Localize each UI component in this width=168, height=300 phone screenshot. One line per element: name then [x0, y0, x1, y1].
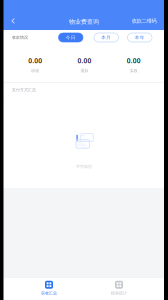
staticText: 空空如也 [76, 164, 92, 169]
button[interactable]: 收款二维码 [128, 14, 159, 28]
staticText: 收款二维码 [131, 18, 156, 24]
staticText: 今日 [66, 35, 76, 40]
staticText: 0.00 [28, 56, 42, 65]
staticText: 收款情况 [12, 35, 28, 40]
staticText: 实收汇总 [41, 291, 57, 296]
staticText: 物业费查询 [69, 18, 99, 25]
staticText: 本月 [101, 35, 111, 40]
button[interactable]: 本月 [94, 33, 118, 42]
staticText: 报表统计 [111, 291, 127, 296]
button[interactable]: Back [3, 11, 22, 31]
staticText: 支付方式汇总 [12, 87, 36, 92]
staticText: 退款 [80, 68, 88, 73]
button[interactable]: 实收汇总 [14, 281, 84, 296]
staticText: 应收 [31, 68, 39, 73]
button[interactable]: 本年 [127, 33, 152, 42]
staticText: 0.00 [77, 56, 91, 65]
staticText: 本年 [135, 35, 145, 40]
staticText: 0.00 [127, 56, 141, 65]
button[interactable]: 报表统计 [84, 281, 154, 296]
button[interactable]: 今日 [58, 33, 83, 42]
staticText: 实收 [130, 68, 138, 73]
